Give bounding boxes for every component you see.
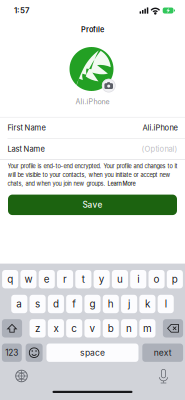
button[interactable]: Change profile photo [69,47,115,92]
staticText: Save [82,200,102,210]
staticText: z [35,322,40,334]
staticText: First Name [7,123,45,132]
button[interactable]: c [66,319,82,337]
staticText: next [154,347,172,358]
staticText: y [99,273,105,285]
staticText: (Optional) [141,144,177,154]
staticText: r [63,273,67,285]
staticText: 1:57 [14,6,30,15]
button[interactable]: z [30,319,46,337]
button[interactable]: next [142,343,183,362]
button[interactable]: k [139,295,155,313]
staticText: h [108,298,114,310]
staticText: space [80,347,105,358]
button[interactable]: f [66,295,82,313]
button[interactable]: j [121,295,137,313]
button[interactable]: q [2,270,18,288]
button[interactable]: u [112,270,128,288]
staticText: c [71,322,77,334]
button[interactable]: a [11,295,27,313]
button[interactable]: Last Name [0,139,185,159]
button[interactable]: Emoji [26,343,43,362]
staticText: f [72,298,76,310]
staticText: Ali.iPhone [142,123,177,132]
staticText: 123 [5,348,18,358]
staticText: p [172,273,178,285]
staticText: u [117,273,123,285]
staticText: g [89,298,95,310]
staticText: k [145,298,150,310]
staticText: x [53,322,58,334]
button[interactable]: p [167,270,183,288]
button[interactable]: b [103,319,119,337]
button[interactable]: t [75,270,91,288]
button[interactable]: d [48,295,64,313]
button[interactable]: v [84,319,101,337]
staticText: v [89,322,95,334]
button[interactable]: h [103,295,119,313]
button[interactable]: y [94,270,110,288]
button[interactable]: o [148,270,165,288]
button[interactable]: Dictate [156,367,170,384]
staticText: a [16,298,22,310]
staticText: Last Name [7,144,44,154]
staticText: l [165,298,167,310]
button[interactable]: space [46,343,138,362]
button[interactable]: m [139,319,155,337]
button[interactable]: n [121,319,137,337]
staticText: Your profile is end-to-end encrypted. Yo… [7,163,177,187]
button[interactable]: l [158,295,174,313]
button[interactable]: Shift [2,319,22,337]
staticText: Profile [81,25,104,34]
staticText: t [82,273,85,285]
staticText: o [154,273,160,285]
button[interactable]: First Name [0,118,185,138]
staticText: w [24,273,32,285]
button[interactable]: Save [8,195,177,215]
staticText: b [108,322,114,334]
staticText: n [126,322,132,334]
button[interactable]: x [48,319,64,337]
button[interactable]: Change keyboard [14,368,29,383]
button[interactable]: w [20,270,36,288]
staticText: e [44,273,50,285]
button[interactable]: r [57,270,73,288]
button[interactable]: Delete [163,319,183,337]
staticText: s [35,298,40,310]
button[interactable]: g [84,295,101,313]
button[interactable]: i [130,270,146,288]
staticText: i [137,273,139,285]
staticText: d [53,298,59,310]
staticText: j [128,298,130,310]
staticText: q [7,273,13,285]
button[interactable]: 123 [2,343,22,362]
button[interactable]: s [30,295,46,313]
staticText: Ali.iPhone [75,97,109,106]
button[interactable]: e [39,270,55,288]
staticText: m [143,322,152,334]
